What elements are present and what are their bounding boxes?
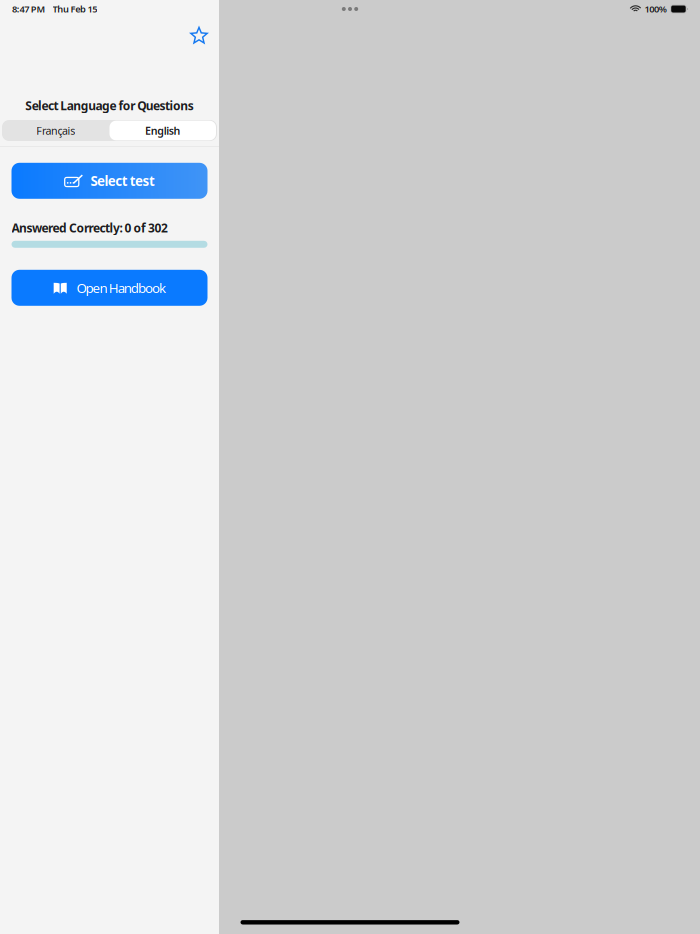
- button[interactable]: Français: [2, 120, 109, 141]
- staticText: English: [145, 123, 180, 138]
- staticText: Open Handbook: [76, 279, 166, 297]
- staticText: Answered Correctly: 0 of 302: [11, 220, 168, 236]
- button[interactable]: Multitasking Controls: [335, 1, 365, 17]
- staticText: Select test: [90, 172, 155, 190]
- staticText: Select Language for Questions: [25, 97, 194, 113]
- button[interactable]: Favorites: [183, 21, 215, 51]
- staticText: Français: [36, 123, 75, 138]
- button[interactable]: Open Handbook: [11, 270, 207, 306]
- staticText: 100%: [644, 3, 667, 15]
- staticText: Thu Feb 15: [52, 3, 97, 15]
- button[interactable]: English: [109, 121, 216, 140]
- button[interactable]: Select test: [11, 163, 207, 199]
- staticText: 8:47 PM: [12, 3, 45, 15]
